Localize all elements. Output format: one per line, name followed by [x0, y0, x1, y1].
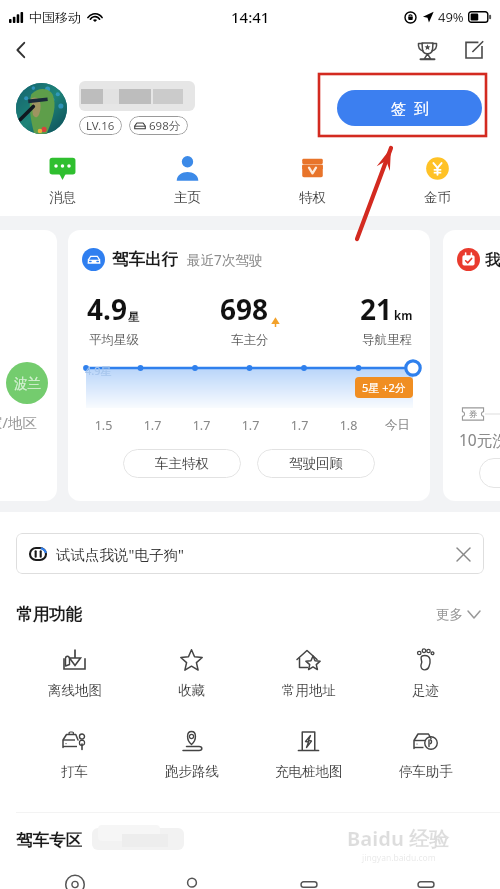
- button[interactable]: 驾车出行: [68, 230, 430, 501]
- button[interactable]: 消息: [0, 144, 125, 216]
- staticText: 最近7次驾驶: [187, 251, 263, 269]
- staticText: 1.5: [79, 417, 128, 434]
- button[interactable]: 试试点我说"电子狗": [16, 533, 484, 574]
- staticText: 消息: [49, 189, 76, 206]
- button[interactable]: Close: [452, 543, 474, 565]
- staticText: 1.7: [177, 417, 226, 434]
- staticText: 特权: [299, 189, 326, 206]
- button[interactable]: 更多: [432, 602, 484, 627]
- staticText: 车主分: [231, 332, 269, 348]
- staticText: 驾车专区: [16, 830, 82, 851]
- button[interactable]: 充电桩地图: [250, 729, 367, 780]
- button[interactable]: 跑步路线: [133, 729, 250, 780]
- button[interactable]: 停车助手: [367, 729, 484, 780]
- button[interactable]: 驾驶回顾: [257, 449, 375, 478]
- staticText: 打车: [61, 763, 88, 780]
- button[interactable]: 698分: [134, 116, 181, 135]
- staticText: 1.7: [226, 417, 275, 434]
- staticText: 停车助手: [399, 763, 453, 780]
- staticText: jingyan.baidu.com: [362, 852, 436, 864]
- button[interactable]: 常用地址: [250, 648, 367, 699]
- staticText: 离线地图: [48, 682, 102, 699]
- button[interactable]: Tab 2: [133, 880, 250, 889]
- button[interactable]: Back: [6, 35, 36, 65]
- staticText: Baidu 经验: [347, 825, 450, 852]
- button[interactable]: 签 到: [337, 90, 482, 126]
- button[interactable]: Tab 1: [16, 880, 133, 889]
- staticText: 波兰: [14, 375, 41, 392]
- staticText: 家/地区: [0, 412, 37, 432]
- button[interactable]: 金币: [375, 144, 500, 216]
- button[interactable]: 波兰: [0, 230, 57, 501]
- staticText: 中国移动: [29, 9, 81, 25]
- button[interactable]: 收藏: [133, 648, 250, 699]
- button[interactable]: 特权: [250, 144, 375, 216]
- staticText: 4.9星: [85, 363, 112, 378]
- staticText: 驾驶回顾: [289, 455, 343, 472]
- staticText: 跑步路线: [165, 763, 219, 780]
- button[interactable]: Achievements: [412, 35, 442, 65]
- staticText: 今日: [373, 417, 422, 433]
- staticText: 签 到: [391, 98, 429, 118]
- staticText: 14:41: [231, 7, 270, 27]
- button[interactable]: 车主特权: [123, 449, 241, 478]
- staticText: 10元洗: [459, 429, 500, 450]
- button[interactable]: 足迹: [367, 648, 484, 699]
- button[interactable]: 打车: [16, 729, 133, 780]
- staticText: LV.16: [86, 118, 115, 134]
- button[interactable]: 主页: [125, 144, 250, 216]
- staticText: 主页: [174, 189, 201, 206]
- staticText: 导航里程: [362, 332, 412, 348]
- staticText: 49%: [438, 8, 464, 26]
- staticText: 21: [360, 290, 393, 328]
- staticText: 金币: [424, 189, 451, 206]
- staticText: 平均星级: [89, 332, 139, 348]
- staticText: 足迹: [412, 682, 439, 699]
- staticText: 车主特权: [155, 455, 209, 472]
- staticText: 1.7: [128, 417, 177, 434]
- button[interactable]: 离线地图: [16, 648, 133, 699]
- staticText: 常用地址: [282, 682, 336, 699]
- button[interactable]: 我: [443, 230, 500, 501]
- staticText: 星: [128, 310, 140, 324]
- staticText: 更多: [436, 606, 463, 623]
- staticText: 驾车出行: [112, 249, 178, 270]
- staticText: 充电桩地图: [275, 763, 343, 780]
- staticText: 5星 +2分: [362, 380, 406, 395]
- staticText: 收藏: [178, 682, 205, 699]
- button[interactable]: Tab 4: [367, 880, 484, 889]
- staticText: 4.9: [87, 290, 127, 328]
- staticText: 698分: [149, 118, 181, 134]
- button[interactable]: LV.16: [86, 116, 115, 135]
- staticText: 券: [469, 409, 478, 420]
- staticText: 1.8: [324, 417, 373, 434]
- button[interactable]: Edit profile: [459, 35, 489, 65]
- button[interactable]: Tab 3: [250, 880, 367, 889]
- staticText: 试试点我说"电子狗": [56, 544, 184, 564]
- staticText: km: [394, 308, 413, 324]
- staticText: 698: [220, 290, 269, 328]
- staticText: 常用功能: [16, 604, 82, 625]
- staticText: 我: [485, 250, 500, 270]
- staticText: 1.7: [275, 417, 324, 434]
